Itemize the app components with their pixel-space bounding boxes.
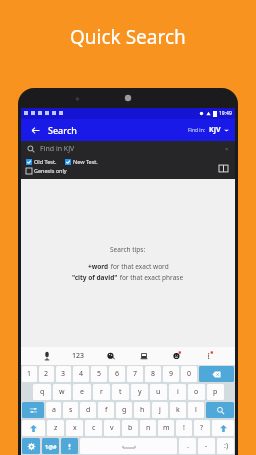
button[interactable]: 3	[56, 366, 71, 382]
staticText: 19:49	[219, 110, 232, 117]
staticText: k	[176, 405, 180, 415]
button[interactable]: 7	[127, 366, 143, 382]
button[interactable]: v	[104, 420, 120, 436]
button[interactable]: 1	[22, 366, 37, 382]
button[interactable]: f	[98, 402, 114, 418]
staticText: a	[52, 405, 56, 415]
staticText: n	[146, 423, 151, 433]
button[interactable]: b	[122, 420, 138, 436]
button[interactable]: 123	[72, 351, 85, 361]
staticText: y	[138, 387, 142, 397]
button[interactable]: 6	[109, 366, 125, 382]
staticText: 5	[97, 369, 102, 379]
staticText: i	[177, 387, 179, 397]
button[interactable]: More options	[202, 349, 216, 363]
button[interactable]: Back	[27, 122, 43, 138]
staticText: :)	[224, 441, 228, 451]
button[interactable]: Backspace	[199, 366, 234, 382]
staticText: for that exact word	[109, 262, 169, 271]
staticText: !	[183, 423, 185, 433]
button[interactable]: l	[188, 402, 204, 418]
button[interactable]: Shift	[212, 420, 234, 436]
button[interactable]: Voice input	[40, 349, 54, 363]
button[interactable]: m	[158, 420, 174, 436]
staticText: Search	[48, 124, 77, 136]
button[interactable]: 8	[145, 366, 161, 382]
button[interactable]: k	[170, 402, 186, 418]
button[interactable]: Select books	[217, 162, 229, 174]
button[interactable]: 1@#	[42, 438, 59, 454]
staticText: Search tips:	[110, 245, 146, 254]
button[interactable]: s	[63, 402, 78, 418]
button[interactable]: e	[73, 384, 91, 400]
button[interactable]: .	[179, 438, 196, 454]
staticText: 0	[187, 369, 192, 379]
button[interactable]: x	[66, 420, 83, 436]
button[interactable]: r	[93, 384, 110, 400]
button[interactable]: w	[53, 384, 71, 400]
button[interactable]: :)	[217, 438, 234, 454]
button[interactable]: ?	[194, 420, 210, 436]
staticText: 1@#	[45, 443, 57, 450]
staticText: s	[69, 405, 73, 415]
button[interactable]: y	[131, 384, 148, 400]
button[interactable]	[80, 438, 177, 454]
button[interactable]: 5	[91, 366, 107, 382]
staticText: q	[40, 387, 45, 397]
button[interactable]: z	[47, 420, 64, 436]
staticText: 2	[44, 369, 49, 379]
button[interactable]: !	[176, 420, 192, 436]
staticText: 7	[133, 369, 138, 379]
button[interactable]: n	[140, 420, 156, 436]
button[interactable]: u	[150, 384, 167, 400]
button[interactable]: a	[46, 402, 61, 418]
button[interactable]: j	[152, 402, 168, 418]
button[interactable]: d	[80, 402, 96, 418]
staticText: Find in KJV	[40, 144, 75, 154]
staticText: w	[59, 387, 65, 397]
button[interactable]: t	[112, 384, 129, 400]
staticText: 6	[115, 369, 120, 379]
staticText: o	[194, 387, 199, 397]
staticText: Genesis only	[34, 167, 67, 174]
button[interactable]: p	[207, 384, 224, 400]
button[interactable]: New Test.	[65, 158, 98, 165]
staticText: 1	[27, 369, 32, 379]
button[interactable]: Input options	[22, 402, 44, 418]
staticText: 4	[79, 369, 84, 379]
staticText: +word	[88, 262, 109, 271]
button[interactable]: o	[188, 384, 205, 400]
staticText: Quick Search	[70, 24, 186, 50]
button[interactable]: Shift	[22, 420, 45, 436]
button[interactable]: Settings	[22, 438, 40, 454]
button[interactable]: -	[198, 438, 215, 454]
button[interactable]: 0	[181, 366, 197, 382]
staticText: p	[213, 387, 218, 397]
button[interactable]: 9	[163, 366, 179, 382]
staticText: 123	[72, 351, 85, 361]
button[interactable]: h	[134, 402, 150, 418]
staticText: ×	[225, 145, 229, 153]
button[interactable]: Emoji	[170, 349, 184, 363]
staticText: ?	[200, 423, 204, 433]
button[interactable]: KJV	[209, 125, 229, 135]
button[interactable]: c	[85, 420, 102, 436]
button[interactable]: Old Test.	[26, 158, 57, 165]
staticText: f	[105, 405, 108, 415]
staticText: b	[128, 423, 133, 433]
button[interactable]: i	[169, 384, 186, 400]
button[interactable]: q	[33, 384, 51, 400]
button[interactable]: 2	[39, 366, 54, 382]
button[interactable]: Genesis only	[26, 167, 67, 174]
staticText: e	[80, 387, 84, 397]
button[interactable]: Search	[206, 402, 234, 418]
button[interactable]: Voice	[61, 438, 78, 454]
button[interactable]: Theme	[104, 349, 118, 363]
staticText: New Test.	[73, 158, 98, 165]
button[interactable]: 4	[73, 366, 89, 382]
staticText: Find in:	[188, 127, 206, 134]
button[interactable]: Find in KJV	[27, 141, 229, 157]
staticText: -	[205, 441, 208, 451]
button[interactable]: g	[116, 402, 132, 418]
button[interactable]: Clipboard	[137, 349, 151, 363]
